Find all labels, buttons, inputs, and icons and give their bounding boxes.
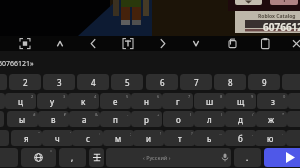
button[interactable]: Close — [282, 36, 300, 51]
staticText: ж — [268, 114, 275, 125]
button[interactable]: х — [288, 93, 300, 109]
button[interactable]: Decrease — [235, 0, 262, 5]
button[interactable]: с — [72, 130, 103, 146]
staticText: 6 — [160, 77, 165, 88]
button[interactable]: Previous — [79, 36, 107, 51]
button[interactable]: ш — [194, 93, 225, 109]
button[interactable]: и — [133, 130, 164, 146]
button[interactable]: Shift — [0, 130, 9, 146]
staticText: я — [24, 133, 29, 144]
button[interactable]: к — [68, 93, 99, 109]
staticText: ) — [221, 112, 223, 117]
button[interactable]: ю — [255, 130, 286, 146]
staticText: а — [82, 114, 87, 125]
button[interactable]: 3 — [43, 74, 75, 90]
staticText: 2 — [23, 77, 28, 88]
button[interactable]: Move cursor — [89, 148, 104, 167]
button[interactable]: г — [162, 93, 193, 109]
staticText: 4 — [94, 94, 97, 99]
staticText: л — [207, 114, 212, 125]
staticText: " — [38, 131, 40, 136]
button[interactable]: 6 — [146, 74, 178, 90]
button[interactable]: , — [59, 148, 86, 167]
button[interactable]: п — [100, 111, 131, 127]
button[interactable]: ы — [7, 111, 38, 127]
button[interactable]: а — [69, 111, 100, 127]
staticText: » — [50, 148, 53, 153]
button[interactable]: у — [37, 93, 68, 109]
staticText: , — [252, 131, 254, 136]
staticText: Roblox Catalog — [258, 13, 296, 20]
staticText: 9 — [262, 77, 267, 88]
button[interactable]: 4 — [77, 74, 109, 90]
staticText: о — [176, 114, 181, 125]
button[interactable]: 5 — [111, 74, 143, 90]
button[interactable]: м — [103, 130, 134, 146]
staticText: ь — [207, 133, 212, 144]
staticText: ! — [160, 131, 162, 136]
staticText: 7 — [188, 94, 191, 99]
button[interactable]: о — [163, 111, 194, 127]
staticText: 60766121» — [0, 59, 34, 69]
button[interactable]: д — [225, 111, 256, 127]
staticText: . — [246, 152, 249, 163]
button[interactable]: б — [225, 130, 256, 146]
staticText: & — [95, 112, 98, 117]
button[interactable]: ж — [256, 111, 287, 127]
staticText: к — [81, 96, 86, 107]
button[interactable]: я — [11, 130, 42, 146]
button[interactable]: 2 — [9, 74, 41, 90]
button[interactable]: т — [164, 130, 195, 146]
staticText: у — [50, 96, 55, 107]
button[interactable]: Send — [264, 148, 300, 167]
button[interactable]: й — [0, 93, 5, 109]
staticText: + — [157, 112, 160, 117]
button[interactable]: Scroll down — [182, 36, 210, 51]
button[interactable]: е — [100, 93, 131, 109]
button[interactable]: л — [194, 111, 225, 127]
button[interactable]: р — [131, 111, 162, 127]
staticText: г — [176, 96, 180, 107]
staticText: с — [86, 133, 90, 144]
staticText: 5 — [126, 94, 129, 99]
button[interactable]: 1 — [0, 74, 7, 90]
staticText: ю — [267, 133, 274, 144]
button[interactable]: в — [38, 111, 69, 127]
staticText: 1 — [282, 0, 287, 5]
button[interactable]: ф — [0, 111, 4, 127]
staticText: б — [238, 133, 243, 144]
staticText: # — [33, 112, 36, 117]
button[interactable]: ч — [42, 130, 73, 146]
button[interactable]: Quantity — [270, 0, 298, 5]
button[interactable]: 7 — [180, 74, 212, 90]
button[interactable]: ь — [194, 130, 225, 146]
button[interactable]: Scroll up — [46, 36, 74, 51]
button[interactable]: Space — [106, 148, 231, 167]
button[interactable]: . — [234, 148, 261, 167]
staticText: ; — [130, 131, 132, 136]
staticText: . — [282, 131, 284, 136]
staticText: ? — [191, 131, 193, 136]
button[interactable]: Select all — [11, 36, 39, 51]
staticText: 5 — [125, 77, 130, 88]
button[interactable]: 9 — [248, 74, 280, 90]
staticText: 7 — [194, 77, 199, 88]
staticText: д — [238, 114, 243, 125]
button[interactable]: з — [257, 93, 288, 109]
button[interactable]: щ — [225, 93, 256, 109]
button[interactable]: ц — [5, 93, 36, 109]
button[interactable]: Text format — [114, 36, 142, 51]
staticText: ш — [206, 96, 214, 107]
button[interactable]: Copy — [218, 36, 246, 51]
button[interactable]: н — [131, 93, 162, 109]
button[interactable]: 8 — [214, 74, 246, 90]
button[interactable]: э — [287, 111, 300, 127]
staticText: : — [99, 131, 101, 136]
staticText: р — [144, 114, 149, 125]
button[interactable]: Paste — [251, 36, 279, 51]
button[interactable]: Change keyboard — [21, 148, 56, 167]
button[interactable]: Next — [149, 36, 177, 51]
button[interactable]: Backspace — [286, 130, 300, 146]
